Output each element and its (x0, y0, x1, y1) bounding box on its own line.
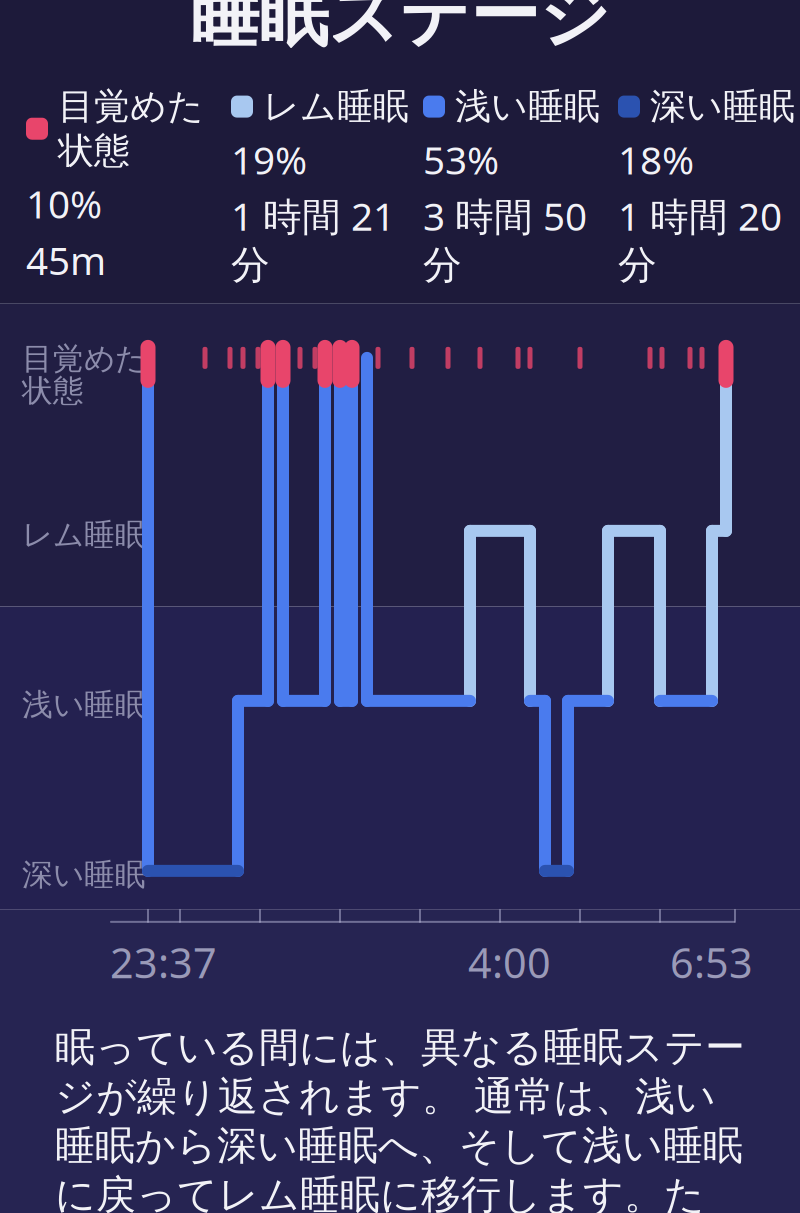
staticText: 19% (231, 134, 307, 185)
staticText: 53% (423, 134, 499, 185)
staticText: 浅い睡眠 (22, 686, 146, 724)
staticText: 18% (618, 134, 694, 185)
staticText: 1 時間 21 分 (231, 190, 395, 289)
staticText: 眠っている間には、異なる睡眠ステージが繰り返されます。 通常は、浅い睡眠から深い… (55, 1023, 745, 1213)
staticText: 45m (26, 234, 106, 286)
staticText: 4:00 (468, 935, 551, 990)
staticText: 深い睡眠 (650, 84, 795, 129)
staticText: 浅い睡眠 (455, 84, 600, 129)
staticText: 睡眠ステージ (190, 0, 610, 58)
staticText: レム睡眠 (22, 516, 146, 554)
staticText: 3 時間 50 分 (423, 190, 587, 289)
staticText: 目覚めた状態 (58, 84, 204, 173)
staticText: 深い睡眠 (22, 856, 146, 894)
staticText: レム睡眠 (263, 84, 409, 129)
staticText: 状態 (22, 372, 84, 410)
staticText: 1 時間 20 分 (618, 190, 782, 289)
staticText: 目覚めた (22, 340, 146, 378)
staticText: 23:37 (110, 935, 217, 990)
staticText: 10% (26, 178, 102, 229)
staticText: 6:53 (670, 935, 753, 990)
